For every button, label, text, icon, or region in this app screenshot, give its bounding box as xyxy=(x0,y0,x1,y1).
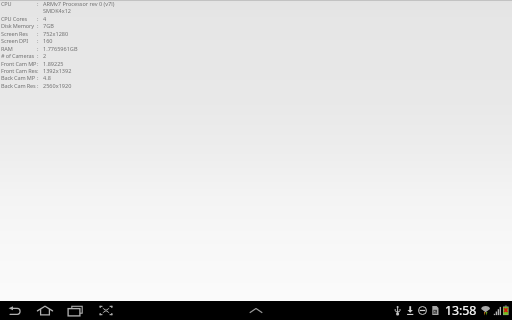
staticText: 1392x1392 xyxy=(43,67,72,75)
staticText: CPU Cores xyxy=(1,15,37,23)
button[interactable]: Recent apps xyxy=(61,301,89,320)
staticText: : xyxy=(37,45,43,53)
staticText: : xyxy=(37,0,43,8)
staticText: : xyxy=(37,37,43,45)
staticText: : xyxy=(37,60,43,68)
staticText: Disk Memory xyxy=(1,22,37,30)
staticText: 160 xyxy=(43,37,53,45)
staticText: Back Cam MP xyxy=(1,74,37,82)
staticText: Screen Res xyxy=(1,30,37,38)
staticText: 752x1280 xyxy=(43,30,69,38)
staticText: 2560x1920 xyxy=(43,82,72,90)
staticText: 2 xyxy=(43,52,47,60)
staticText: RAM xyxy=(1,45,37,53)
staticText: 1.89225 xyxy=(43,60,64,68)
staticText: Back Cam Res xyxy=(1,82,37,90)
button[interactable]: Status xyxy=(0,301,512,320)
staticText: : xyxy=(37,52,43,60)
staticText: 4 xyxy=(43,15,47,23)
button[interactable]: Back xyxy=(1,301,29,320)
staticText: 4.8 xyxy=(43,74,51,82)
staticText: Front Cam MP xyxy=(1,60,37,68)
button[interactable]: Home xyxy=(31,301,59,320)
staticText: 13:58 xyxy=(445,302,477,319)
staticText: : xyxy=(37,82,43,90)
staticText: Front Cam Res xyxy=(1,67,37,75)
staticText: CPU xyxy=(1,0,37,8)
staticText: : xyxy=(37,30,43,38)
staticText: ARMv7 Processor rev 0 (v7l) xyxy=(43,0,115,8)
staticText: SMDK4x12 xyxy=(43,7,72,15)
staticText: : xyxy=(37,74,43,82)
staticText: : xyxy=(37,22,43,30)
staticText: 1.7765961GB xyxy=(43,45,78,53)
button[interactable]: Expand notifications xyxy=(242,301,270,320)
staticText: : xyxy=(37,67,43,75)
staticText: : xyxy=(37,15,43,23)
staticText: 7GB xyxy=(43,22,54,30)
staticText: # of Cameras xyxy=(1,52,37,60)
staticText: Screen DPI xyxy=(1,37,37,45)
button[interactable]: Screenshot xyxy=(92,301,120,320)
